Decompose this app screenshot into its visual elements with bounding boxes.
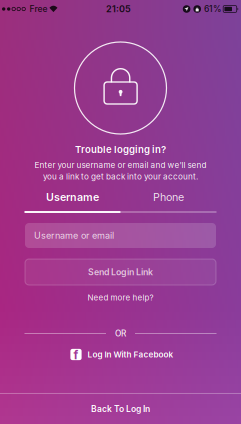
- staticText: Need more help?: [87, 293, 153, 302]
- button[interactable]: Need more help?: [60, 290, 180, 304]
- staticText: 21:05: [106, 3, 131, 14]
- button[interactable]: Username or email: [25, 223, 216, 248]
- staticText: 61%: [204, 4, 221, 14]
- staticText: Log In With Facebook: [88, 350, 174, 359]
- staticText: Username or email: [34, 230, 114, 241]
- staticText: Back To Log In: [91, 404, 150, 414]
- staticText: Free: [30, 4, 48, 14]
- staticText: Username: [46, 190, 99, 203]
- staticText: Trouble logging in?: [75, 144, 166, 155]
- staticText: Enter your username or email and we'll s…: [34, 160, 206, 170]
- staticText: Send Login Link: [88, 267, 153, 277]
- staticText: Phone: [153, 190, 184, 203]
- button[interactable]: Back To Log In: [0, 393, 241, 424]
- staticText: OR: [115, 328, 126, 338]
- button[interactable]: Phone: [120, 187, 216, 207]
- button[interactable]: Send Login Link: [25, 259, 216, 285]
- button[interactable]: Username: [24, 187, 120, 207]
- button[interactable]: f: [70, 347, 174, 361]
- staticText: you a link to get back into your account…: [43, 172, 198, 181]
- staticText: f: [73, 347, 78, 362]
